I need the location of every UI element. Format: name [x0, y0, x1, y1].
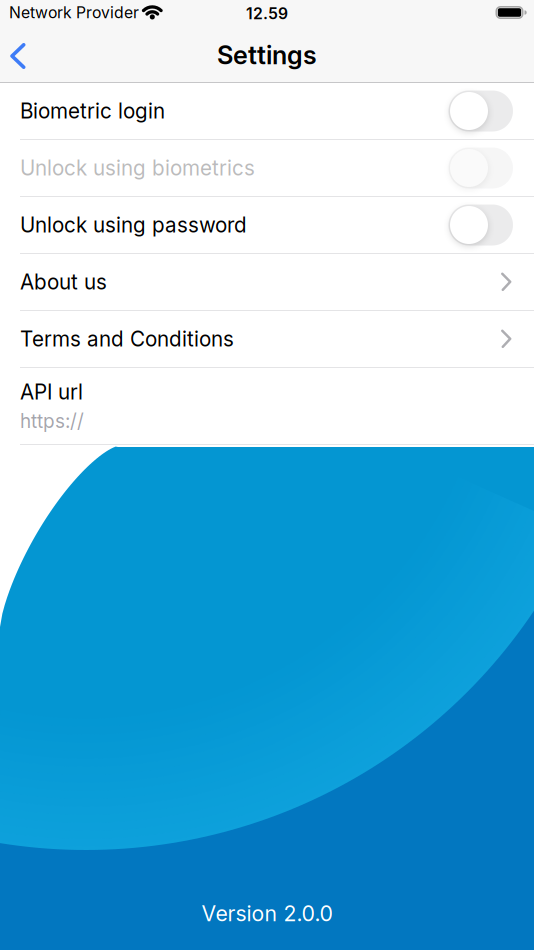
button[interactable]: Unlock using password — [448, 204, 513, 245]
button[interactable]: Unlock using biometrics — [448, 147, 513, 188]
staticText: Unlock using password — [20, 212, 247, 237]
staticText: Network Provider — [9, 3, 139, 22]
staticText: https:// — [20, 409, 84, 432]
staticText: Biometric login — [20, 98, 165, 123]
button[interactable]: Back — [0, 30, 26, 82]
button[interactable]: About us — [0, 254, 534, 310]
button[interactable]: Biometric login — [448, 90, 513, 131]
staticText: Version 2.0.0 — [201, 901, 332, 926]
staticText: Terms and Conditions — [20, 326, 234, 351]
staticText: 12.59 — [246, 4, 288, 23]
button[interactable]: API url — [0, 368, 534, 444]
staticText: Unlock using biometrics — [20, 155, 255, 180]
button[interactable]: Terms and Conditions — [0, 311, 534, 367]
staticText: API url — [20, 379, 83, 404]
staticText: About us — [20, 269, 107, 294]
staticText: Settings — [217, 40, 317, 70]
